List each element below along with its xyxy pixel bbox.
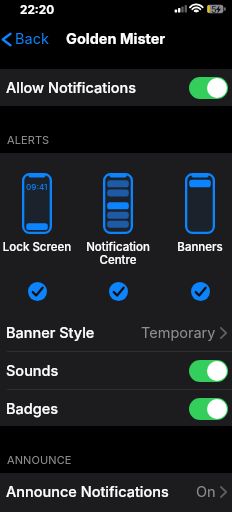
- staticText: 09:41: [26, 182, 48, 192]
- staticText: Banner Style: [6, 324, 95, 342]
- button[interactable]: Selected: [28, 282, 47, 301]
- button[interactable]: Toggle: [189, 398, 228, 420]
- button[interactable]: Banners: [161, 167, 232, 312]
- staticText: Temporary: [141, 324, 216, 342]
- button[interactable]: Toggle: [189, 77, 228, 99]
- button[interactable]: Back: [0, 30, 57, 48]
- button[interactable]: Selected: [191, 282, 210, 301]
- staticText: Badges: [6, 400, 59, 418]
- staticText: Notification Centre: [79, 240, 157, 267]
- button[interactable]: Selected: [109, 282, 128, 301]
- staticText: ALERTS: [7, 133, 50, 146]
- staticText: Lock Screen: [0, 240, 76, 254]
- staticText: Announce Notifications: [6, 483, 169, 501]
- staticText: Banners: [161, 240, 232, 254]
- staticText: Sounds: [6, 362, 59, 380]
- staticText: Back: [15, 30, 49, 48]
- button[interactable]: Notification Centre: [79, 167, 157, 312]
- button[interactable]: Toggle: [189, 360, 228, 382]
- button[interactable]: Announce Notifications: [0, 473, 232, 510]
- staticText: 5: [211, 4, 217, 15]
- staticText: On: [196, 483, 216, 501]
- button[interactable]: Banner Style: [0, 314, 232, 351]
- button[interactable]: 09:41: [0, 167, 76, 312]
- staticText: Allow Notifications: [6, 79, 137, 97]
- button[interactable]: Allow Notifications: [0, 69, 232, 106]
- button[interactable]: Badges: [0, 390, 232, 427]
- staticText: Golden Mister: [66, 30, 166, 48]
- button[interactable]: Sounds: [0, 352, 232, 389]
- staticText: ANNOUNCE: [7, 453, 72, 466]
- staticText: 22:20: [20, 3, 55, 17]
